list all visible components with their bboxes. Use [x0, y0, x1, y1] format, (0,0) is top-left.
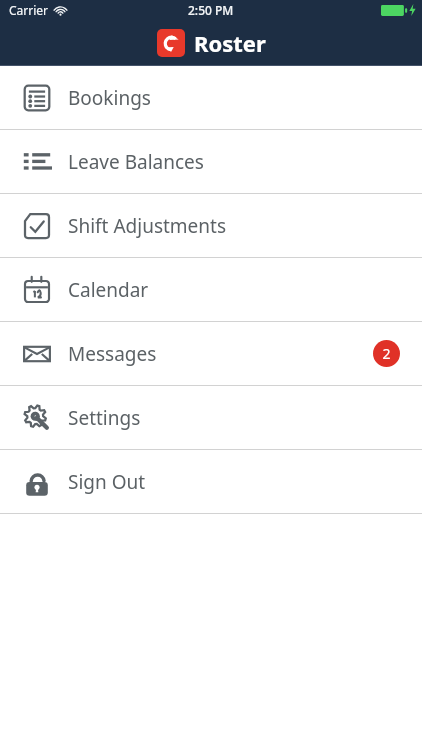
- staticText: Carrier: [9, 2, 49, 18]
- button[interactable]: Leave Balances: [0, 130, 422, 193]
- button[interactable]: Messages: [0, 322, 422, 385]
- button[interactable]: Bookings: [0, 66, 422, 129]
- staticText: 2: [382, 344, 391, 363]
- button[interactable]: Settings: [0, 386, 422, 449]
- staticText: Shift Adjustments: [68, 213, 227, 239]
- staticText: 2:50 PM: [188, 2, 234, 18]
- button[interactable]: Shift Adjustments: [0, 194, 422, 257]
- staticText: Messages: [68, 341, 157, 367]
- staticText: Calendar: [68, 277, 149, 303]
- button[interactable]: Sign Out: [0, 450, 422, 513]
- staticText: Sign Out: [68, 469, 146, 495]
- staticText: Roster: [194, 28, 266, 58]
- staticText: Bookings: [68, 85, 151, 111]
- staticText: Leave Balances: [68, 149, 204, 175]
- staticText: Settings: [68, 405, 141, 431]
- button[interactable]: Calendar: [0, 258, 422, 321]
